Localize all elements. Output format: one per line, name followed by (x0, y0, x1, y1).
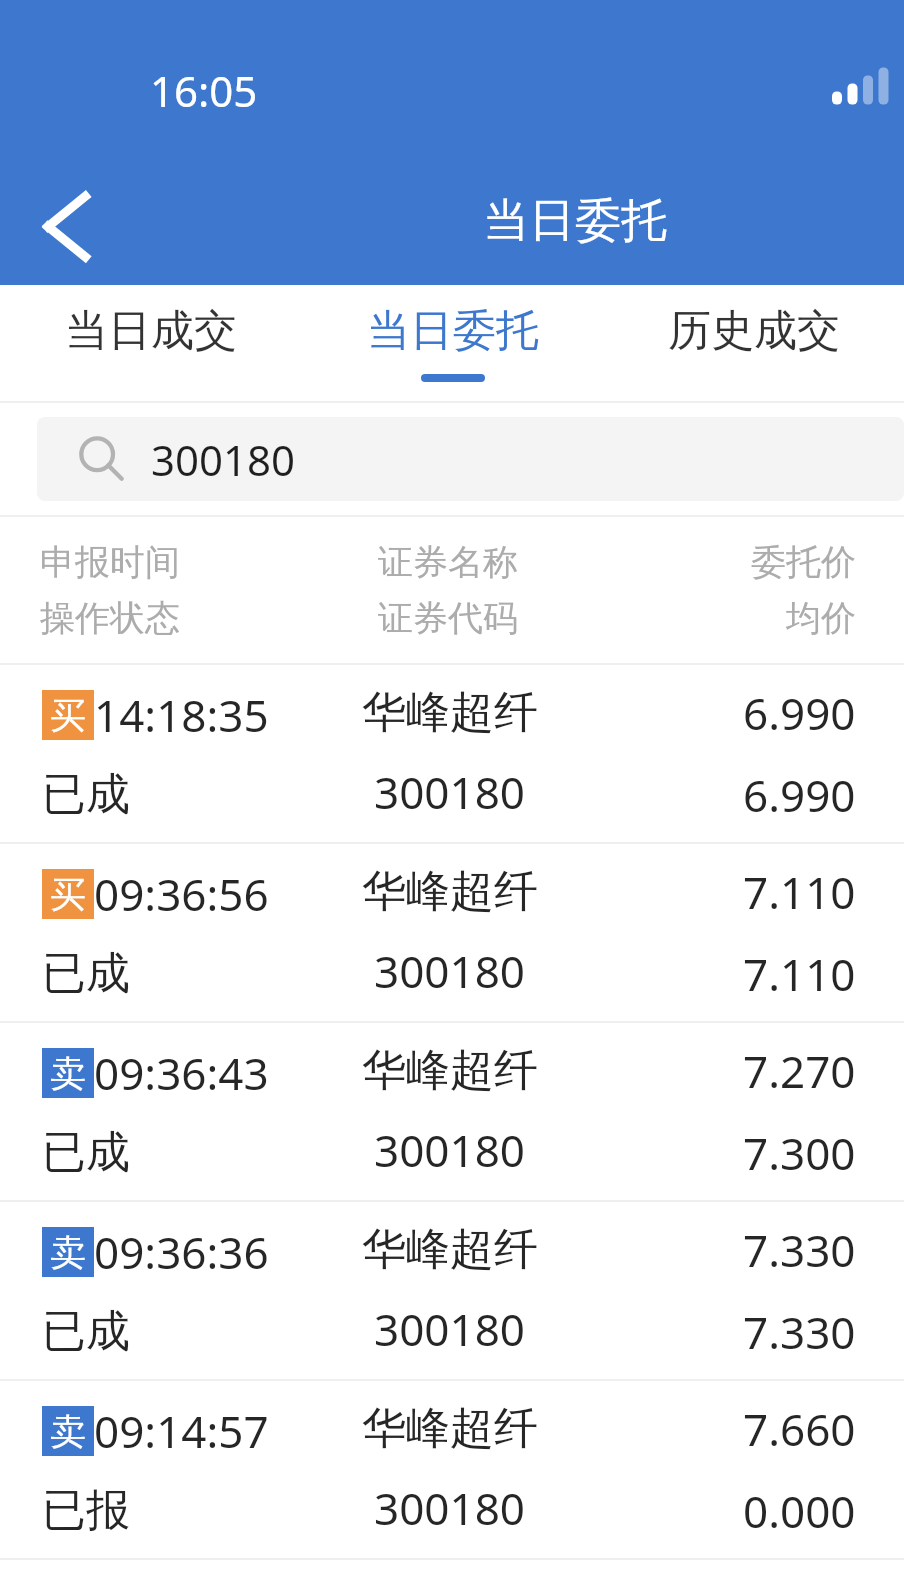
staticText: 7.300 (743, 1123, 856, 1183)
staticText: 7.110 (743, 944, 856, 1004)
button[interactable]: 卖 (0, 1381, 904, 1558)
staticText: 华峰超纤 (362, 685, 538, 740)
staticText: 卖 (50, 1230, 86, 1275)
button[interactable]: 买 (0, 844, 904, 1021)
staticText: 09:36:43 (94, 1043, 269, 1103)
staticText: 14:18:35 (94, 685, 269, 745)
staticText: 历史成交 (668, 304, 840, 358)
staticText: 300180 (374, 762, 526, 822)
staticText: 已成 (42, 1304, 130, 1359)
staticText: 卖 (50, 1051, 86, 1096)
staticText: 已报 (42, 1483, 130, 1538)
staticText: 7.270 (743, 1041, 856, 1101)
staticText: 华峰超纤 (362, 1401, 538, 1456)
staticText: 委托价 (751, 540, 856, 584)
button[interactable]: 当日委托 (302, 285, 603, 401)
staticText: 已成 (42, 767, 130, 822)
staticText: 申报时间 (40, 540, 180, 584)
staticText: 均价 (786, 596, 856, 640)
button[interactable]: 历史成交 (603, 285, 904, 401)
button[interactable]: Back (14, 170, 122, 282)
staticText: 操作状态 (40, 596, 180, 640)
staticText: 证券名称 (378, 540, 518, 584)
staticText: 当日成交 (65, 304, 237, 358)
staticText: 当日委托 (483, 192, 667, 250)
staticText: 300180 (374, 1299, 526, 1359)
staticText: 7.110 (743, 862, 856, 922)
staticText: 300180 (151, 431, 296, 488)
staticText: 卖 (50, 1409, 86, 1454)
staticText: 华峰超纤 (362, 864, 538, 919)
staticText: 300180 (374, 1120, 526, 1180)
staticText: 0.000 (743, 1481, 856, 1541)
button[interactable]: 卖 (0, 1023, 904, 1200)
staticText: 买 (50, 872, 86, 917)
staticText: 买 (50, 693, 86, 738)
button[interactable]: 买 (0, 665, 904, 842)
staticText: 已成 (42, 946, 130, 1001)
staticText: 300180 (374, 1478, 526, 1538)
staticText: 7.330 (743, 1220, 856, 1280)
button[interactable]: 300180 (37, 417, 904, 501)
staticText: 6.990 (743, 765, 856, 825)
staticText: 09:36:56 (94, 864, 269, 924)
staticText: 华峰超纤 (362, 1222, 538, 1277)
staticText: 09:36:36 (94, 1222, 269, 1282)
staticText: 6.990 (743, 683, 856, 743)
button[interactable]: 当日成交 (0, 285, 302, 401)
button[interactable]: 卖 (0, 1202, 904, 1379)
staticText: 当日委托 (367, 304, 539, 358)
staticText: 华峰超纤 (362, 1043, 538, 1098)
staticText: 证券代码 (378, 596, 518, 640)
staticText: 已成 (42, 1125, 130, 1180)
staticText: 16:05 (150, 62, 258, 119)
staticText: 300180 (374, 941, 526, 1001)
staticText: 09:14:57 (94, 1401, 269, 1461)
staticText: 7.330 (743, 1302, 856, 1362)
staticText: 7.660 (743, 1399, 856, 1459)
